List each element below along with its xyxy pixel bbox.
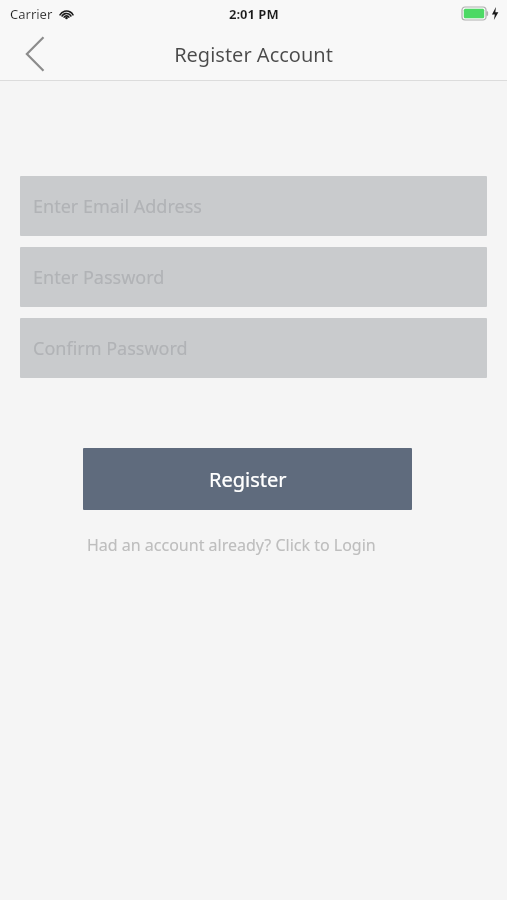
button[interactable]: Back [12,30,60,78]
staticText: Register Account [174,41,333,68]
staticText: Enter Email Address [33,194,202,219]
staticText: Confirm Password [33,336,188,361]
button[interactable]: Had an account already? Click to Login [81,530,382,560]
button[interactable]: Enter Email Address [20,176,487,236]
staticText: Register [209,466,287,493]
staticText: 2:01 PM [229,5,279,23]
staticText: Carrier [10,5,53,23]
staticText: Enter Password [33,265,165,290]
button[interactable]: Confirm Password [20,318,487,378]
staticText: Had an account already? Click to Login [87,534,376,556]
button[interactable]: Register [83,448,412,510]
